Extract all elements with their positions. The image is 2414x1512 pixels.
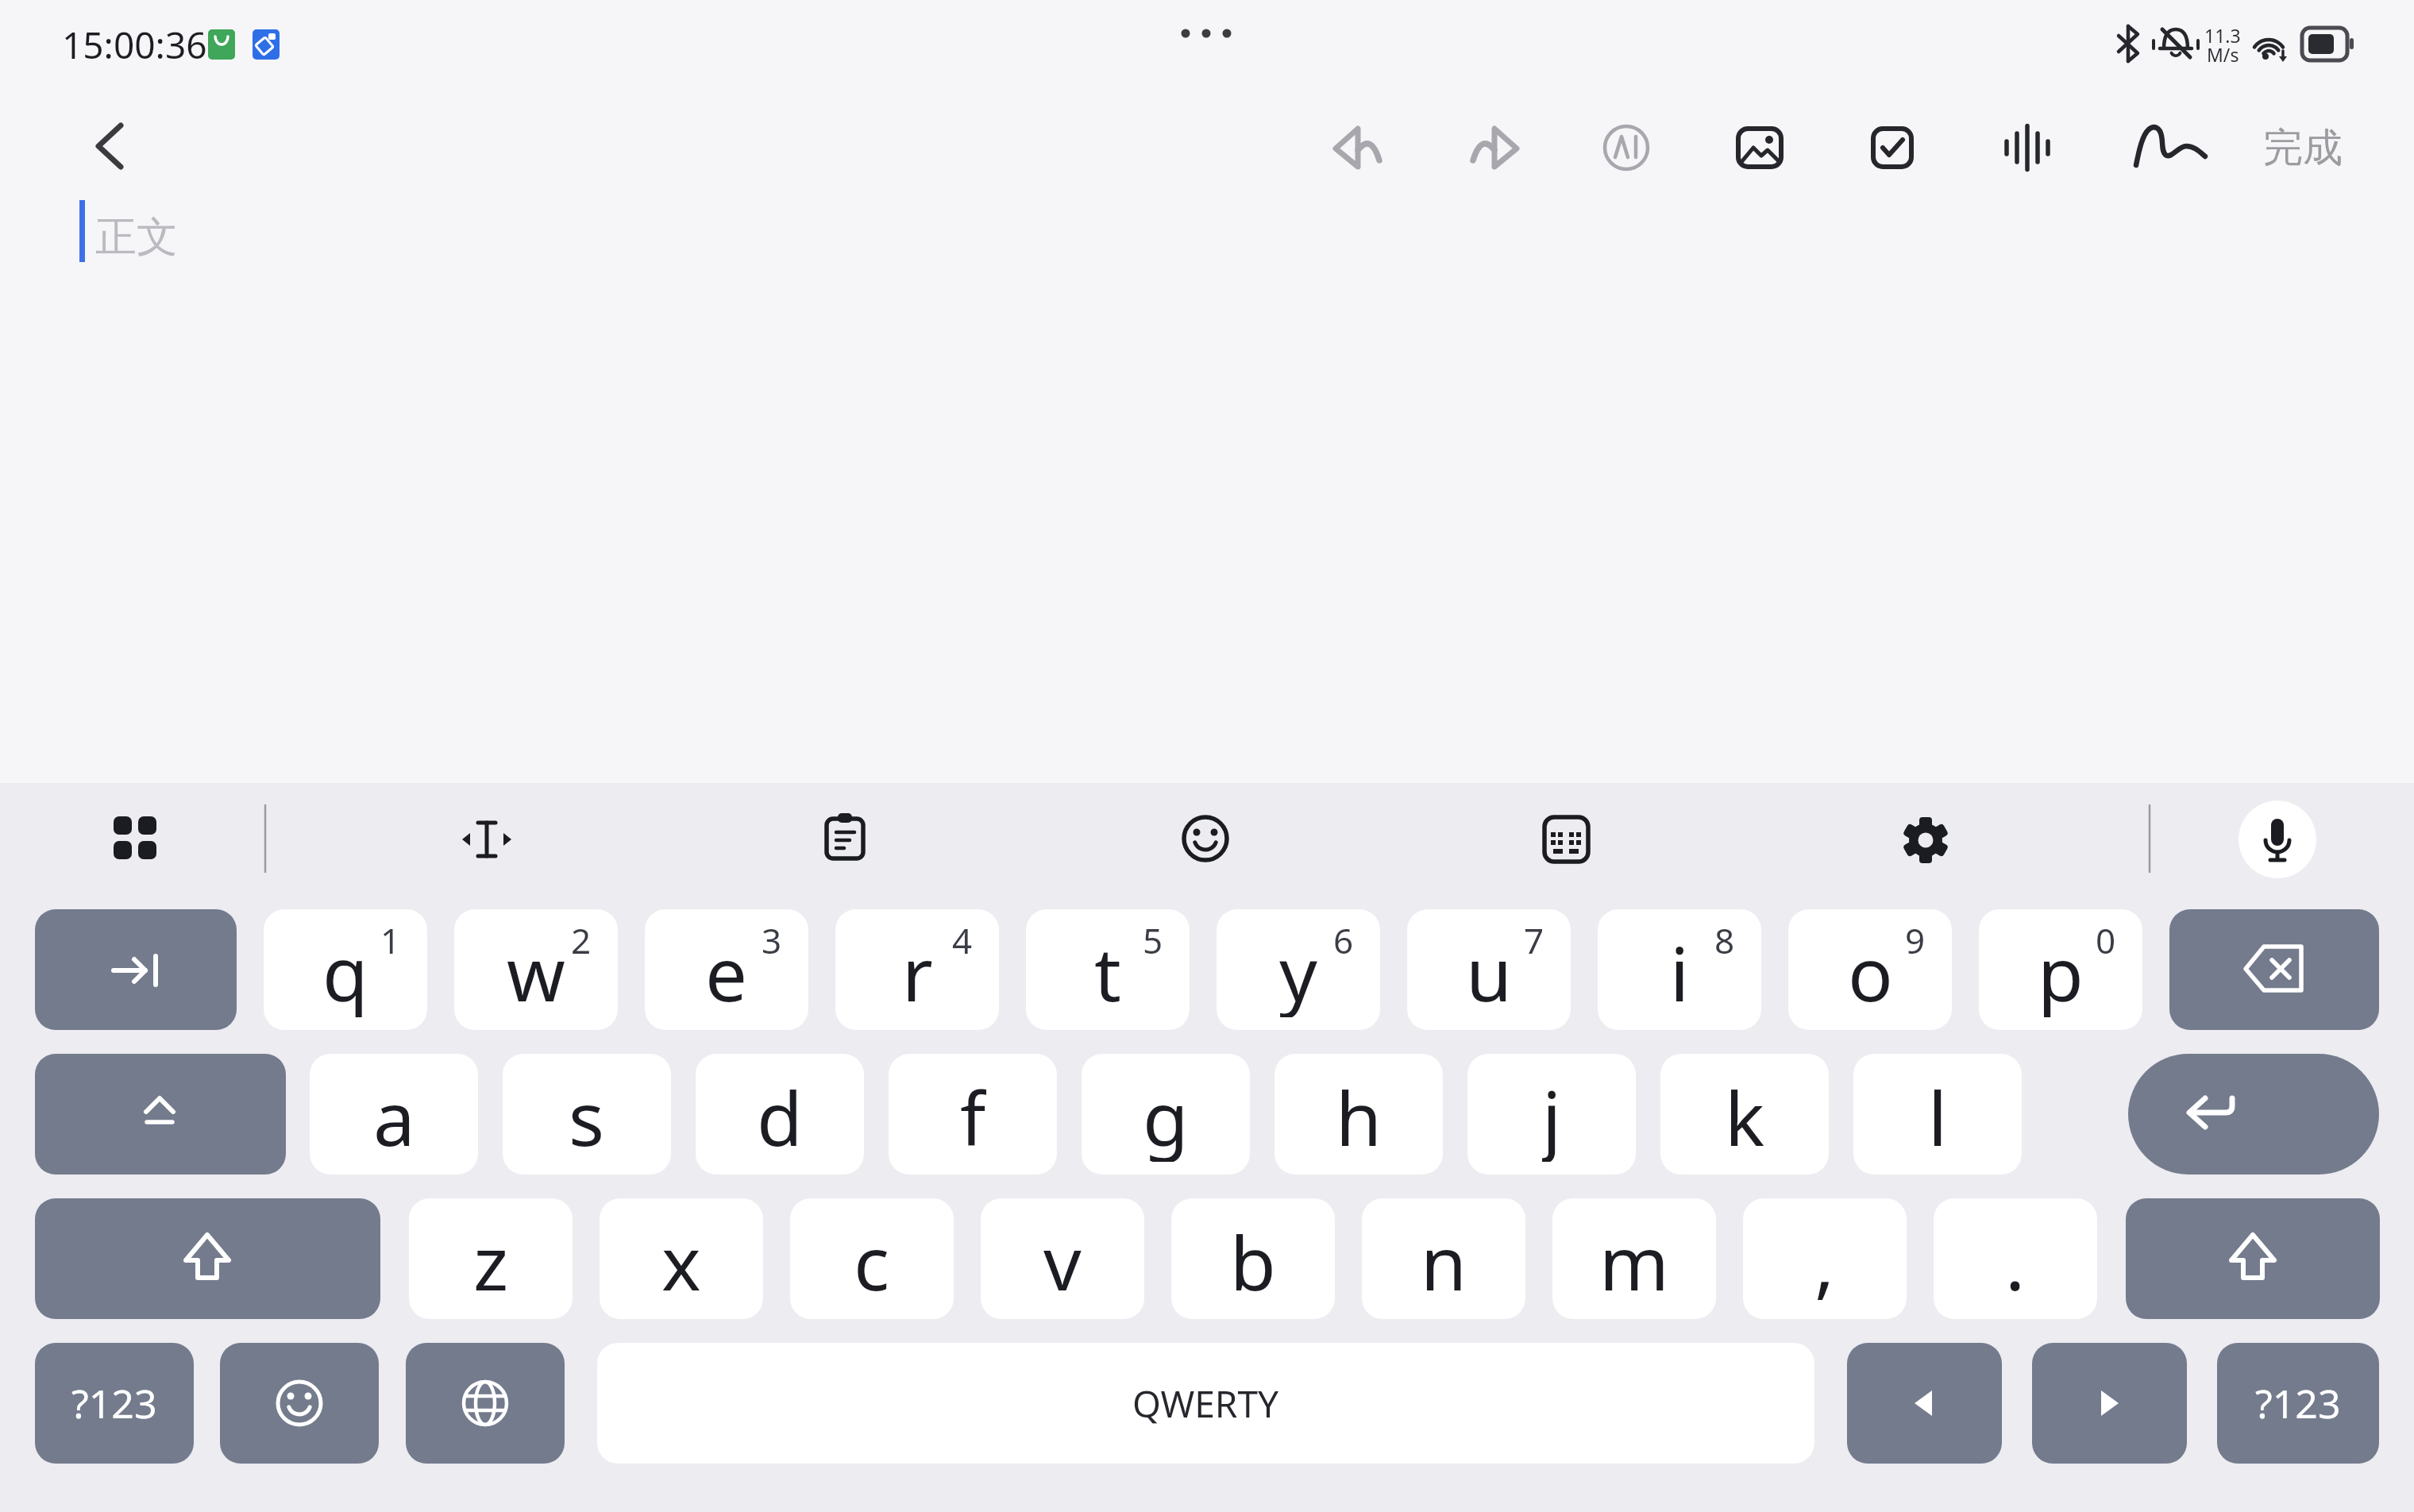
- staticText: h: [1336, 1066, 1382, 1162]
- staticText: u: [1466, 922, 1513, 1017]
- staticText: ?123: [71, 1376, 157, 1430]
- staticText: d: [757, 1066, 803, 1162]
- staticText: 6: [1333, 916, 1354, 964]
- staticText: z: [473, 1211, 509, 1306]
- staticText: i: [1670, 922, 1690, 1017]
- staticText: m: [1599, 1211, 1669, 1306]
- staticText: y: [1279, 922, 1317, 1017]
- staticText: n: [1421, 1211, 1467, 1306]
- staticText: t: [1094, 922, 1121, 1017]
- staticText: .: [2005, 1211, 2026, 1306]
- staticText: 15:00:36: [62, 20, 207, 70]
- staticText: f: [960, 1066, 986, 1162]
- staticText: 8: [1714, 916, 1735, 964]
- staticText: r: [902, 922, 933, 1017]
- staticText: w: [507, 922, 565, 1017]
- staticText: g: [1143, 1066, 1189, 1162]
- staticText: 9: [1905, 916, 1926, 964]
- staticText: ?123: [2255, 1376, 2341, 1430]
- staticText: 3: [762, 916, 782, 964]
- staticText: k: [1725, 1066, 1765, 1162]
- staticText: x: [661, 1211, 701, 1306]
- staticText: ,: [1814, 1211, 1835, 1306]
- staticText: 1: [380, 916, 401, 964]
- staticText: j: [1542, 1066, 1562, 1162]
- staticText: 正文: [95, 211, 178, 264]
- staticText: 11.3: [2204, 23, 2241, 48]
- staticText: b: [1230, 1211, 1276, 1306]
- staticText: 完成: [2263, 123, 2343, 173]
- staticText: o: [1848, 922, 1893, 1017]
- staticText: QWERTY: [1132, 1379, 1279, 1429]
- staticText: q: [322, 922, 368, 1017]
- staticText: M/s: [2207, 42, 2239, 67]
- staticText: s: [569, 1066, 605, 1162]
- staticText: a: [373, 1066, 415, 1162]
- staticText: 5: [1143, 916, 1163, 964]
- staticText: l: [1928, 1066, 1948, 1162]
- staticText: 4: [952, 916, 973, 964]
- staticText: 2: [571, 916, 592, 964]
- staticText: 0: [2096, 916, 2116, 964]
- staticText: p: [2038, 922, 2084, 1017]
- staticText: v: [1043, 1211, 1082, 1306]
- staticText: 7: [1524, 916, 1544, 964]
- staticText: c: [854, 1211, 890, 1306]
- staticText: e: [705, 922, 748, 1017]
